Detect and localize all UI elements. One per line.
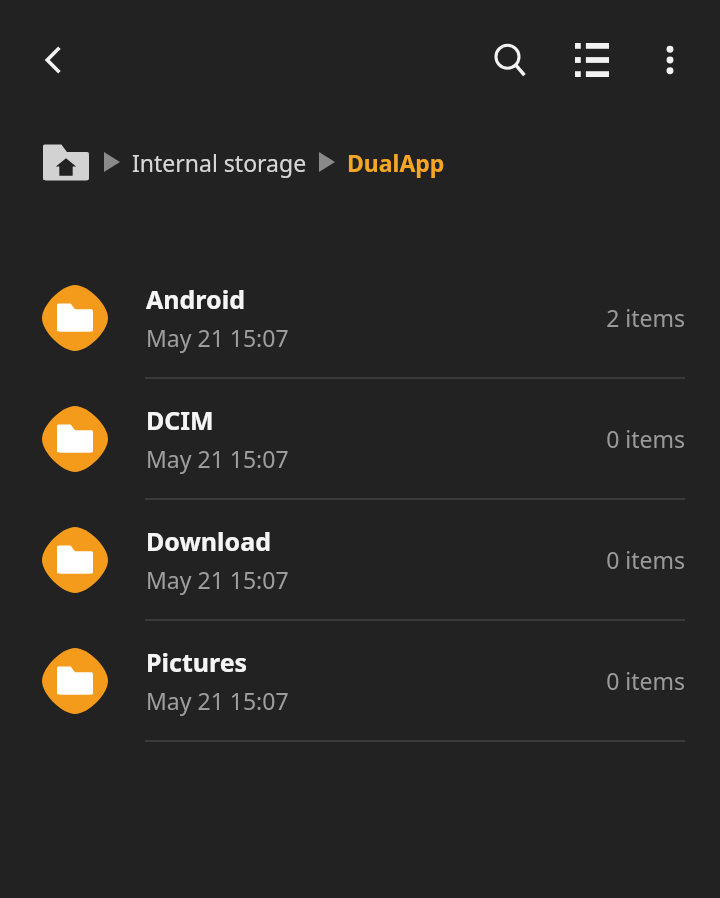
button[interactable]: Pictures — [0, 621, 720, 742]
staticText: May 21 15:07 — [146, 685, 289, 716]
staticText: May 21 15:07 — [146, 564, 289, 595]
button[interactable]: Android — [0, 258, 720, 379]
button[interactable]: View mode — [556, 24, 628, 96]
staticText: 0 items — [606, 544, 685, 575]
staticText: Android — [146, 282, 245, 316]
staticText: DCIM — [146, 403, 214, 437]
staticText: 0 items — [606, 423, 685, 454]
button[interactable]: Download — [0, 500, 720, 621]
staticText: Internal storage — [132, 147, 307, 178]
staticText: May 21 15:07 — [146, 322, 289, 353]
button[interactable]: Search — [474, 24, 546, 96]
staticText: DualApp — [347, 147, 445, 178]
staticText: 0 items — [606, 665, 685, 696]
staticText: May 21 15:07 — [146, 443, 289, 474]
button[interactable]: DualApp — [347, 147, 445, 178]
button[interactable]: Back — [20, 26, 88, 94]
button[interactable]: Home — [42, 138, 90, 186]
button[interactable]: Internal storage — [132, 147, 307, 178]
button[interactable]: More options — [634, 24, 706, 96]
button[interactable]: DCIM — [0, 379, 720, 500]
staticText: 2 items — [606, 302, 685, 333]
staticText: Pictures — [146, 645, 248, 679]
staticText: Download — [146, 524, 271, 558]
